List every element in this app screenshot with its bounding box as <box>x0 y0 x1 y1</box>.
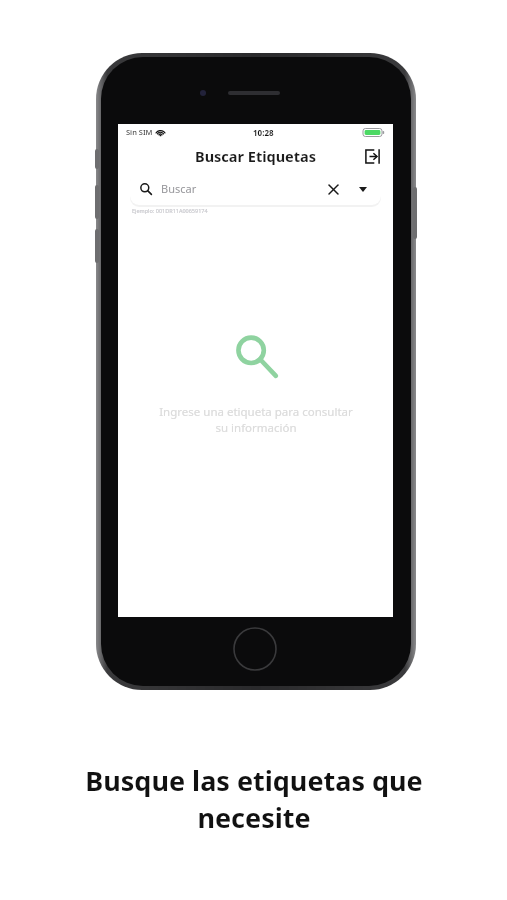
staticText: Buscar <box>161 181 197 196</box>
staticText: Busque las etiquetas que <box>85 762 423 799</box>
button[interactable]: Limpiar <box>325 181 341 197</box>
staticText: Sin SIM <box>126 127 153 137</box>
button[interactable]: Cerrar sesión <box>361 145 383 167</box>
staticText: necesite <box>197 799 311 836</box>
button[interactable]: Buscar <box>130 172 381 205</box>
staticText: Buscar Etiquetas <box>195 146 317 166</box>
staticText: 10:28 <box>253 127 274 138</box>
staticText: su información <box>215 420 297 436</box>
button[interactable]: Desplegar opciones <box>355 181 371 197</box>
staticText: Ejemplo: 001DR11A00659174 <box>132 207 208 214</box>
staticText: Ingrese una etiqueta para consultar <box>159 404 353 420</box>
